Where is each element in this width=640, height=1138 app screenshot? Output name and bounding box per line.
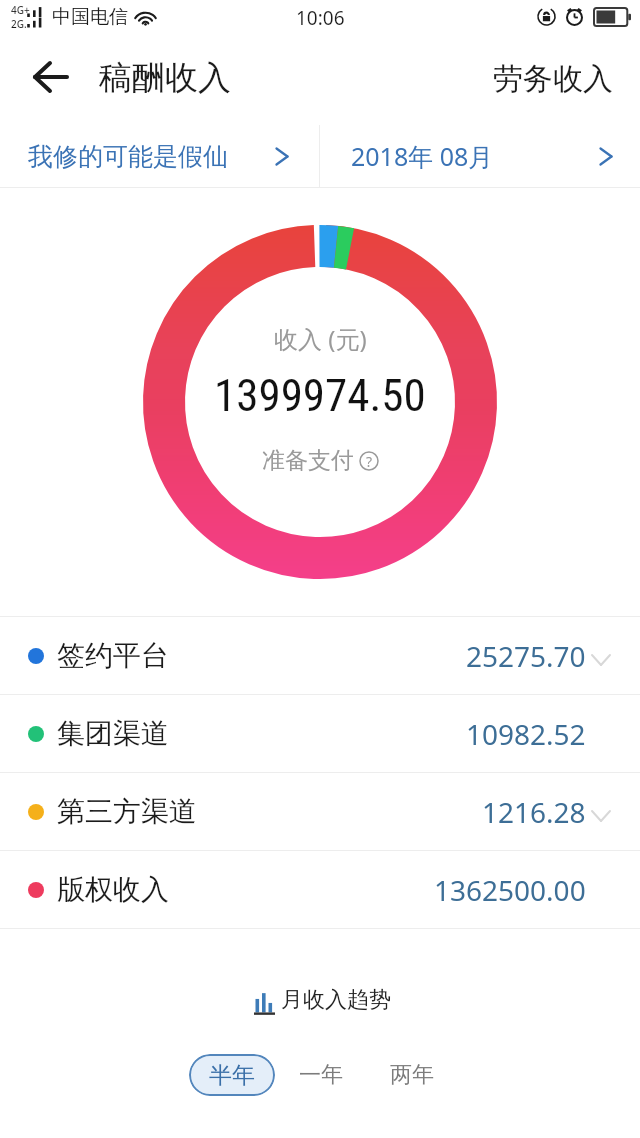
staticText: 10:06 xyxy=(296,5,345,31)
button[interactable]: 半年 xyxy=(189,1054,275,1096)
staticText: ? xyxy=(366,452,373,471)
staticText: 准备支付 xyxy=(262,446,354,475)
button[interactable]: 劳务收入 xyxy=(471,48,640,114)
staticText: 集团渠道 xyxy=(57,716,169,751)
staticText: 版权收入 xyxy=(57,872,169,907)
button[interactable]: 第三方渠道 xyxy=(0,773,640,850)
staticText: 月收入趋势 xyxy=(281,986,391,1014)
staticText: 第三方渠道 xyxy=(57,794,197,829)
staticText: 劳务收入 xyxy=(493,60,613,98)
staticText: 1362500.00 xyxy=(434,871,586,909)
button[interactable]: 两年 xyxy=(377,1050,447,1100)
staticText: 10982.52 xyxy=(466,715,586,753)
staticText: 签约平台 xyxy=(57,638,169,673)
button[interactable]: 集团渠道 xyxy=(0,695,640,772)
staticText: 1399974.50 xyxy=(214,369,426,422)
staticText: 稿酬收入 xyxy=(99,57,231,99)
staticText: 2G. xyxy=(11,17,27,31)
staticText: 4G+ xyxy=(11,3,30,17)
staticText: 半年 xyxy=(209,1061,255,1090)
staticText: 1216.28 xyxy=(482,793,586,831)
button[interactable]: Back xyxy=(18,50,84,112)
button[interactable]: 一年 xyxy=(286,1050,356,1100)
staticText: 收入 (元) xyxy=(274,322,367,355)
button[interactable]: 2018年 08月 xyxy=(320,125,640,187)
button[interactable]: 版权收入 xyxy=(0,851,640,928)
staticText: 中国电信 xyxy=(52,5,128,29)
staticText: 2018年 08月 xyxy=(351,139,494,173)
staticText: 两年 xyxy=(390,1061,434,1089)
staticText: 我修的可能是假仙 xyxy=(28,141,228,172)
button[interactable]: 我修的可能是假仙 xyxy=(0,125,319,187)
staticText: 一年 xyxy=(299,1061,343,1089)
button[interactable]: 签约平台 xyxy=(0,617,640,694)
staticText: 25275.70 xyxy=(466,637,586,675)
